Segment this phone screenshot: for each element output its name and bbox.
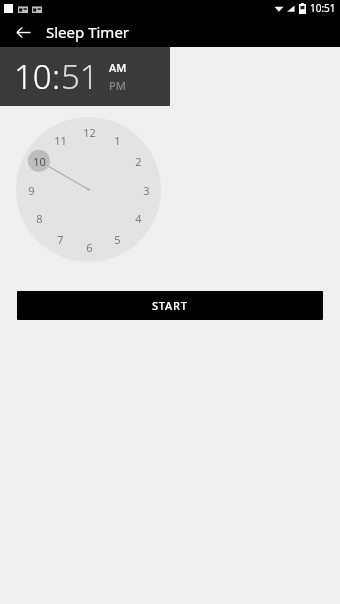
button[interactable]: 7 — [49, 228, 71, 250]
button[interactable]: 10 — [14, 54, 52, 99]
button[interactable]: PM — [109, 78, 126, 93]
staticText: 5 — [114, 232, 121, 247]
staticText: 1 — [114, 133, 121, 148]
staticText: Sleep Timer — [46, 22, 130, 42]
button[interactable]: 5 — [106, 228, 128, 250]
button[interactable]: 51 — [61, 54, 99, 99]
button[interactable]: 6 — [78, 236, 100, 258]
staticText: 4 — [135, 211, 142, 226]
button[interactable]: START — [17, 291, 323, 320]
button[interactable]: Back — [9, 18, 37, 46]
staticText: 3 — [143, 183, 150, 198]
button[interactable]: 2 — [127, 150, 149, 172]
staticText: 2 — [135, 154, 142, 169]
button[interactable]: AM — [109, 60, 127, 75]
button[interactable]: 12 — [78, 121, 100, 143]
button[interactable]: 4 — [127, 207, 149, 229]
button[interactable]: Clock face hour picker — [16, 117, 161, 262]
staticText: 10:51 — [310, 1, 336, 15]
staticText: 12 — [83, 125, 96, 140]
button[interactable]: 9 — [20, 179, 42, 201]
staticText: AM — [109, 60, 127, 75]
staticText: 11 — [54, 133, 67, 148]
staticText: 9 — [28, 183, 35, 198]
button[interactable]: 10 — [28, 150, 50, 172]
staticText: 8 — [36, 211, 43, 226]
staticText: 7 — [57, 232, 64, 247]
button[interactable]: 1 — [106, 129, 128, 151]
button[interactable]: 11 — [49, 129, 71, 151]
button[interactable]: 3 — [135, 179, 157, 201]
staticText: : — [52, 54, 61, 99]
staticText: START — [152, 298, 188, 313]
button[interactable]: 8 — [28, 207, 50, 229]
staticText: 10 — [33, 154, 46, 169]
staticText: PM — [109, 78, 126, 93]
staticText: 6 — [86, 240, 93, 255]
